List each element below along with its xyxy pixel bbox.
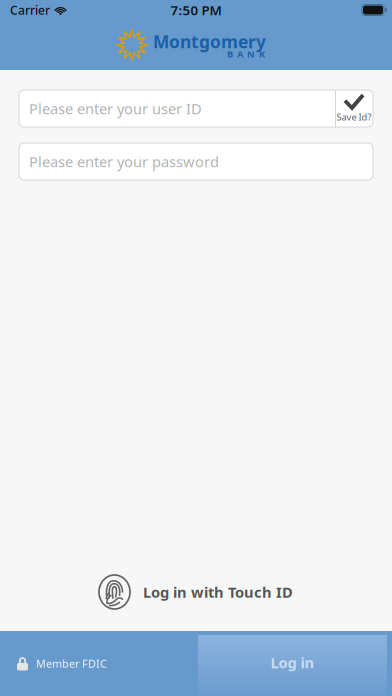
staticText: Log in with Touch ID bbox=[143, 582, 293, 602]
staticText: Log in bbox=[270, 653, 314, 672]
staticText: 7:50 PM bbox=[170, 1, 221, 19]
staticText: Montgomery bbox=[153, 30, 266, 53]
staticText: Member FDIC bbox=[36, 656, 107, 671]
button[interactable]: Save Id bbox=[335, 90, 373, 127]
staticText: Carrier bbox=[10, 2, 50, 18]
button[interactable]: Member FDIC bbox=[0, 631, 198, 696]
staticText: Please enter your password bbox=[29, 152, 219, 171]
staticText: B A N K bbox=[227, 48, 265, 60]
staticText: Save Id? bbox=[336, 111, 371, 123]
button[interactable]: Log in with Touch ID bbox=[0, 564, 392, 631]
staticText: Please enter your user ID bbox=[29, 99, 202, 118]
button[interactable]: Log in bbox=[198, 635, 387, 696]
